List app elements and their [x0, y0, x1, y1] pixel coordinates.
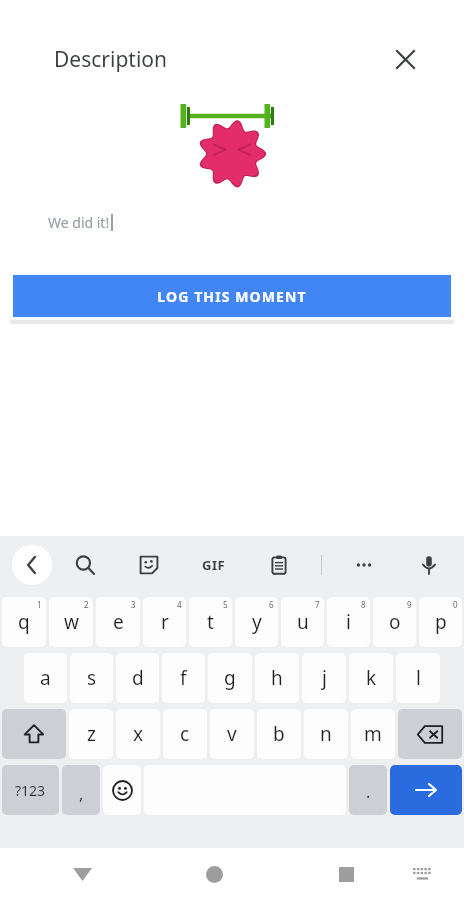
button[interactable]: Stickers — [132, 548, 166, 582]
button[interactable]: Shift — [2, 709, 66, 759]
staticText: 0 — [453, 599, 458, 610]
staticText: l — [416, 665, 421, 691]
staticText: 9 — [407, 599, 412, 610]
staticText: t — [207, 609, 214, 635]
button[interactable]: p — [419, 597, 462, 647]
staticText: We did it! — [48, 213, 110, 232]
staticText: LOG THIS MOMENT — [157, 287, 307, 306]
button[interactable]: Home — [194, 854, 234, 894]
staticText: , — [79, 783, 84, 805]
button[interactable]: More options — [347, 548, 381, 582]
button[interactable]: r — [143, 597, 186, 647]
button[interactable]: l — [396, 653, 440, 703]
button[interactable]: y — [235, 597, 278, 647]
staticText: v — [227, 721, 237, 747]
staticText: 1 — [37, 599, 42, 610]
button[interactable]: g — [208, 653, 252, 703]
staticText: 3 — [131, 599, 136, 610]
staticText: m — [364, 721, 382, 747]
button[interactable]: d — [116, 653, 159, 703]
staticText: s — [87, 665, 97, 691]
staticText: e — [113, 609, 124, 635]
button[interactable]: u — [281, 597, 324, 647]
staticText: 5 — [223, 599, 228, 610]
button[interactable]: i — [327, 597, 370, 647]
staticText: a — [40, 665, 51, 691]
staticText: ?123 — [15, 781, 46, 800]
staticText: w — [64, 609, 79, 635]
staticText: y — [252, 609, 262, 635]
staticText: n — [320, 721, 332, 747]
staticText: . — [366, 781, 371, 803]
staticText: p — [435, 609, 447, 635]
button[interactable]: j — [302, 653, 346, 703]
button[interactable]: Backspace — [398, 709, 462, 759]
button[interactable]: c — [163, 709, 207, 759]
button[interactable]: Close — [388, 42, 422, 76]
staticText: 2 — [84, 599, 89, 610]
button[interactable]: k — [349, 653, 393, 703]
staticText: z — [87, 721, 96, 747]
staticText: d — [132, 665, 144, 691]
button[interactable]: Hide keyboard — [62, 854, 102, 894]
button[interactable]: t — [189, 597, 232, 647]
staticText: j — [322, 665, 327, 691]
button[interactable]: Switch keyboard — [402, 854, 442, 894]
button[interactable]: Recents — [326, 854, 366, 894]
staticText: x — [133, 721, 144, 747]
staticText: u — [297, 609, 309, 635]
button[interactable]: w — [49, 597, 93, 647]
button[interactable]: q — [2, 597, 46, 647]
staticText: 4 — [177, 599, 182, 610]
staticText: g — [224, 665, 236, 691]
staticText: GIF — [202, 556, 226, 574]
staticText: f — [180, 665, 187, 691]
staticText: o — [389, 609, 401, 635]
button[interactable]: Voice input — [412, 548, 446, 582]
button[interactable]: s — [70, 653, 113, 703]
button[interactable]: Back — [12, 545, 52, 585]
button[interactable]: b — [257, 709, 301, 759]
staticText: q — [18, 609, 30, 635]
button[interactable]: Search — [68, 548, 102, 582]
staticText: r — [161, 609, 169, 635]
staticText: 7 — [315, 599, 320, 610]
button[interactable]: z — [69, 709, 113, 759]
button[interactable]: a — [24, 653, 67, 703]
staticText: i — [346, 609, 351, 635]
button[interactable]: . — [349, 765, 387, 815]
staticText: c — [180, 721, 190, 747]
button[interactable]: e — [96, 597, 140, 647]
button[interactable]: GIF — [197, 548, 231, 582]
button[interactable]: v — [210, 709, 254, 759]
button[interactable]: ?123 — [2, 765, 59, 815]
staticText: 8 — [361, 599, 366, 610]
button[interactable]: LOG THIS MOMENT — [13, 275, 451, 317]
button[interactable]: x — [116, 709, 160, 759]
button[interactable]: f — [162, 653, 205, 703]
button[interactable]: m — [351, 709, 395, 759]
button[interactable]: o — [373, 597, 416, 647]
button[interactable]: h — [255, 653, 299, 703]
staticText: 6 — [269, 599, 274, 610]
staticText: h — [271, 665, 283, 691]
button[interactable]: n — [304, 709, 348, 759]
button[interactable]: , — [62, 765, 100, 815]
staticText: b — [273, 721, 285, 747]
staticText: k — [366, 665, 377, 691]
button[interactable]: Emoji — [103, 765, 141, 815]
staticText: Description — [54, 45, 168, 74]
button[interactable]: Enter — [390, 765, 462, 815]
button[interactable]: Clipboard — [262, 548, 296, 582]
